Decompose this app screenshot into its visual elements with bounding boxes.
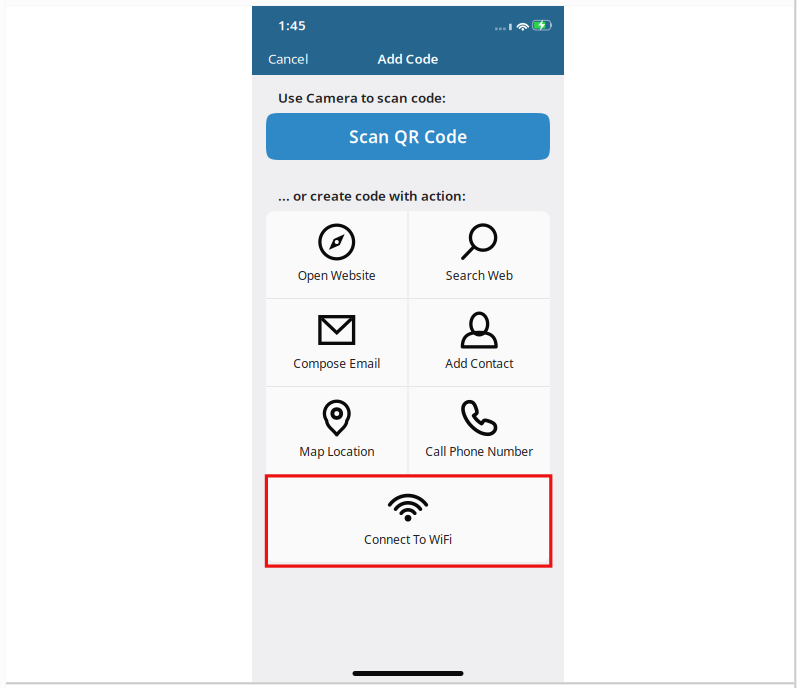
button[interactable]: Compose Email (266, 299, 407, 386)
staticText: Use Camera to scan code: (278, 89, 446, 106)
staticText: Add Code (377, 50, 438, 67)
button[interactable]: Search Web (408, 211, 550, 298)
staticText: Open Website (298, 267, 376, 283)
staticText: Add Contact (445, 355, 513, 371)
staticText: Scan QR Code (349, 125, 467, 148)
button[interactable]: Scan QR Code (266, 113, 550, 160)
button[interactable]: Connect To WiFi (266, 475, 550, 562)
staticText: Call Phone Number (425, 443, 533, 459)
staticText: Compose Email (293, 355, 380, 371)
button[interactable]: Call Phone Number (408, 387, 550, 474)
button[interactable]: Map Location (266, 387, 407, 474)
button[interactable]: Open Website (266, 211, 407, 298)
staticText: ... or create code with action: (278, 187, 466, 204)
button[interactable]: Add Contact (408, 299, 550, 386)
button[interactable]: Cancel (252, 42, 342, 75)
staticText: Cancel (268, 50, 308, 67)
staticText: Search Web (446, 267, 513, 283)
staticText: Map Location (299, 443, 374, 459)
staticText: 1:45 (278, 16, 306, 34)
staticText: Connect To WiFi (364, 531, 452, 547)
